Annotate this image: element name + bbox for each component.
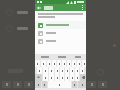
- button[interactable]: Key: [52, 60, 56, 67]
- button[interactable]: Key: [65, 67, 69, 74]
- button[interactable]: Key: [60, 74, 64, 81]
- button[interactable]: Key: [60, 67, 64, 74]
- button[interactable]: Key: [48, 81, 71, 88]
- button[interactable]: Key: [43, 74, 48, 81]
- button[interactable]: Key: [62, 60, 66, 67]
- button[interactable]: Key: [80, 67, 84, 74]
- button[interactable]: Key: [49, 67, 54, 74]
- button[interactable]: Key: [70, 74, 74, 81]
- button[interactable]: [35, 37, 86, 45]
- button[interactable]: Key: [43, 67, 48, 74]
- button[interactable]: [35, 29, 86, 37]
- button[interactable]: More options: [79, 4, 86, 11]
- button[interactable]: Key: [37, 67, 42, 74]
- button[interactable]: Key: [49, 74, 54, 81]
- button[interactable]: Shift: [35, 74, 42, 81]
- button[interactable]: Key: [57, 60, 61, 67]
- button[interactable]: Key: [67, 60, 71, 67]
- button[interactable]: Key: [72, 60, 76, 67]
- button[interactable]: Key: [65, 74, 69, 81]
- button[interactable]: Key: [78, 81, 86, 88]
- button[interactable]: Key: [55, 67, 59, 74]
- button[interactable]: Key: [35, 81, 41, 88]
- button[interactable]: Key: [77, 60, 81, 67]
- button[interactable]: Key: [35, 60, 40, 67]
- button[interactable]: Key: [47, 60, 51, 67]
- button[interactable]: Key: [55, 74, 59, 81]
- button[interactable]: Back: [35, 4, 42, 11]
- button[interactable]: Key: [42, 81, 47, 88]
- button[interactable]: Key: [82, 60, 86, 67]
- button[interactable]: Key: [75, 74, 79, 81]
- button[interactable]: [35, 21, 86, 29]
- button[interactable]: Backspace: [80, 74, 86, 81]
- button[interactable]: Key: [75, 67, 79, 74]
- button[interactable]: Key: [72, 81, 77, 88]
- button[interactable]: Key: [70, 67, 74, 74]
- button[interactable]: Key: [41, 60, 46, 67]
